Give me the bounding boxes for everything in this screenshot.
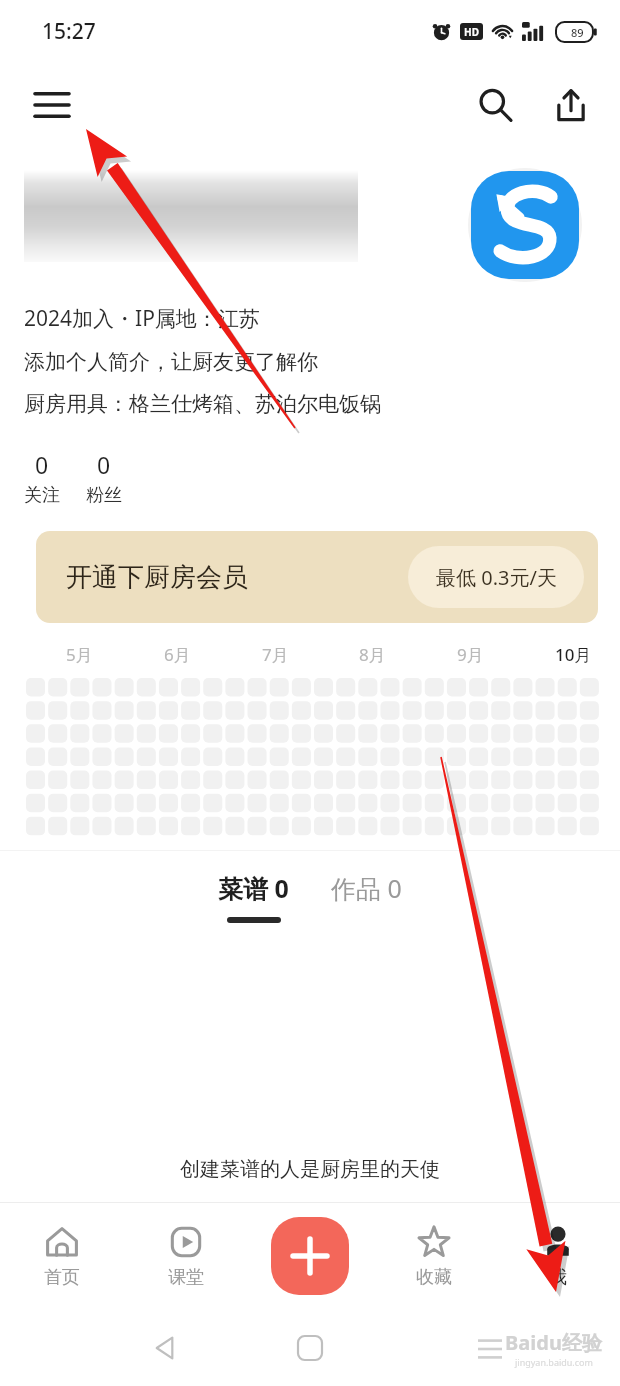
staticText: 开通下厨房会员	[66, 561, 248, 594]
staticText: 最低 0.3元/天	[436, 564, 557, 591]
button[interactable]: Back	[140, 1324, 188, 1372]
staticText: 0	[97, 449, 111, 480]
staticText: 0	[35, 449, 49, 480]
button[interactable]: Avatar	[466, 166, 584, 284]
button[interactable]: 0	[86, 449, 122, 507]
staticText: 粉丝	[86, 484, 122, 507]
staticText: 10月	[555, 643, 592, 666]
staticText: 9月	[457, 643, 484, 666]
button[interactable]: Share	[546, 80, 596, 130]
button[interactable]: 0	[24, 449, 60, 507]
staticText: 收藏	[416, 1266, 452, 1289]
staticText: 89	[571, 25, 584, 40]
button[interactable]: 我	[496, 1202, 620, 1310]
button[interactable]: 菜谱 0	[218, 871, 289, 923]
staticText: 6月	[164, 643, 191, 666]
button[interactable]: Create	[248, 1202, 372, 1310]
staticText: 首页	[44, 1266, 80, 1289]
button[interactable]: 首页	[0, 1202, 124, 1310]
button[interactable]: Search	[470, 80, 520, 130]
staticText: 作品 0	[331, 871, 402, 905]
staticText: jingyan.baidu.com	[515, 1356, 593, 1368]
staticText: 8月	[359, 643, 386, 666]
button[interactable]: Menu	[26, 79, 78, 131]
button[interactable]: 课堂	[124, 1202, 248, 1310]
staticText: 菜谱 0	[218, 871, 289, 905]
staticText: 厨房用具：格兰仕烤箱、苏泊尔电饭锅	[24, 391, 381, 417]
button[interactable]: 作品 0	[331, 871, 402, 905]
staticText: 我	[549, 1266, 567, 1289]
staticText: 添加个人简介，让厨友更了解你	[24, 349, 318, 375]
staticText: Baidu经验	[505, 1329, 602, 1356]
staticText: 关注	[24, 484, 60, 507]
staticText: 课堂	[168, 1266, 204, 1289]
button[interactable]: 收藏	[372, 1202, 496, 1310]
staticText: 15:27	[42, 17, 96, 46]
staticText: 7月	[262, 643, 289, 666]
button[interactable]: Home	[286, 1324, 334, 1372]
staticText: HD	[464, 25, 479, 39]
button[interactable]: 开通下厨房会员	[36, 531, 598, 623]
staticText: 2024加入・IP属地：江苏	[24, 304, 260, 333]
staticText: 5月	[66, 643, 93, 666]
staticText: 创建菜谱的人是厨房里的天使	[0, 1157, 620, 1182]
